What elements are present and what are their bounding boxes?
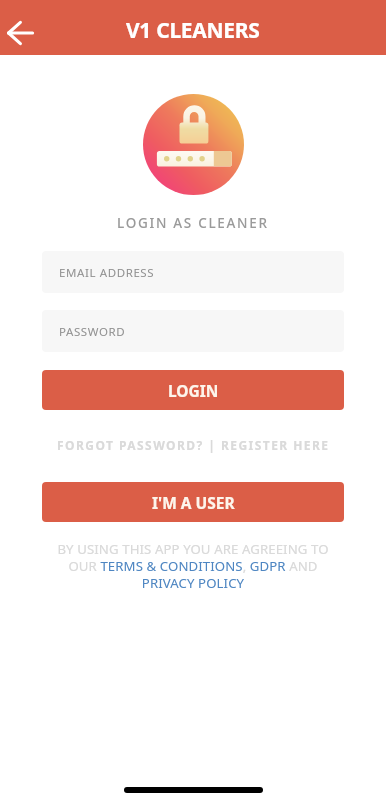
button[interactable]: LOGIN: [42, 370, 344, 410]
button[interactable]: PASSWORD: [42, 310, 344, 352]
staticText: LOGIN: [168, 380, 219, 401]
staticText: V1 CLEANERS: [126, 16, 260, 45]
button[interactable]: FORGOT PASSWORD? | REGISTER HERE: [53, 434, 334, 456]
staticText: EMAIL ADDRESS: [59, 265, 155, 281]
button[interactable]: Back: [0, 7, 43, 53]
button[interactable]: I'M A USER: [42, 482, 344, 522]
staticText: PASSWORD: [59, 324, 126, 340]
button[interactable]: EMAIL ADDRESS: [42, 251, 344, 293]
staticText: LOGIN AS CLEANER: [117, 214, 269, 232]
button[interactable]: BY USING THIS APP YOU ARE AGREEING TO OU…: [51, 540, 335, 592]
staticText: I'M A USER: [152, 492, 235, 513]
